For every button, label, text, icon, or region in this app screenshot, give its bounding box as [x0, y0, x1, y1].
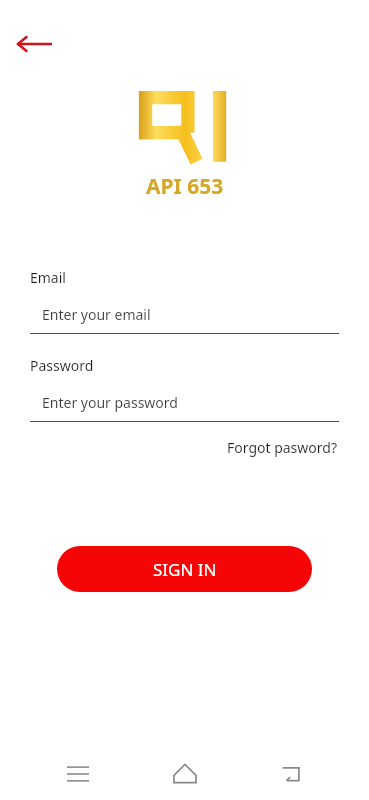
button[interactable]: Forgot pasword?	[225, 436, 339, 459]
staticText: Forgot pasword?	[227, 438, 337, 457]
staticText: Enter your password	[42, 393, 178, 412]
button[interactable]: SIGN IN	[57, 546, 312, 592]
button[interactable]: Back	[263, 748, 319, 800]
staticText: SIGN IN	[153, 558, 217, 581]
button[interactable]: Recent apps	[50, 748, 106, 800]
button[interactable]: Home	[157, 748, 213, 800]
staticText: Enter your email	[42, 305, 151, 324]
button[interactable]: Enter your email	[30, 305, 339, 334]
button[interactable]: Back	[8, 24, 60, 64]
staticText: Email	[30, 268, 66, 287]
staticText: Password	[30, 356, 94, 375]
button[interactable]: Enter your password	[30, 393, 339, 422]
staticText: API 653	[146, 172, 224, 201]
